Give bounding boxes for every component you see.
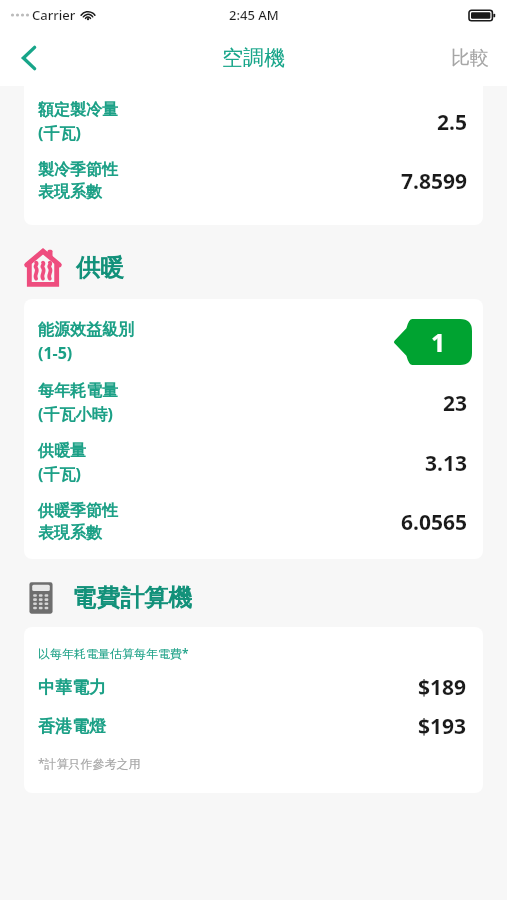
staticText: 每年耗電量 [38,381,118,401]
staticText: 製冷季節性 [38,160,118,180]
staticText: Carrier [32,6,76,24]
staticText: $193 [418,712,467,741]
staticText: *計算只作參考之用 [38,755,141,771]
staticText: 6.0565 [401,508,467,537]
staticText: 表現系數 [38,523,102,543]
staticText: (千瓦) [38,122,81,144]
button[interactable]: 供暖量 [24,433,483,493]
staticText: 供暖量 [38,441,86,461]
staticText: 空調機 [222,45,285,71]
staticText: 香港電燈 [38,716,106,737]
staticText: 中華電力 [38,677,106,698]
button[interactable]: 供暖季節性 [24,493,483,551]
button[interactable]: 香港電燈 [38,712,467,741]
button[interactable]: 額定製冷量 [24,86,483,152]
button[interactable]: 電費計算機 [24,581,507,615]
staticText: 3.13 [425,449,467,478]
staticText: 額定製冷量 [38,100,118,120]
staticText: 2.5 [437,108,467,137]
button[interactable]: 比較 [433,30,507,86]
staticText: 23 [442,389,467,418]
staticText: 以每年耗電量估算每年電費* [38,645,189,661]
button[interactable]: 中華電力 [38,673,467,702]
button[interactable]: Back [0,30,58,86]
staticText: 供暖 [76,253,124,283]
staticText: 電費計算機 [72,583,192,613]
staticText: (千瓦小時) [38,403,113,425]
button[interactable]: 能源效益級別 [24,307,483,373]
staticText: 2:45 AM [229,6,279,24]
button[interactable]: 每年耗電量 [24,373,483,433]
staticText: 表現系數 [38,182,102,202]
staticText: 7.8599 [401,167,467,196]
button[interactable]: 供暖 [24,249,507,287]
staticText: (1-5) [38,342,73,364]
staticText: (千瓦) [38,463,81,485]
staticText: 能源效益級別 [38,320,134,340]
button[interactable]: 製冷季節性 [24,152,483,210]
staticText: 供暖季節性 [38,501,118,521]
staticText: $189 [418,673,467,702]
staticText: 比較 [451,46,489,70]
staticText: 1 [431,325,446,359]
